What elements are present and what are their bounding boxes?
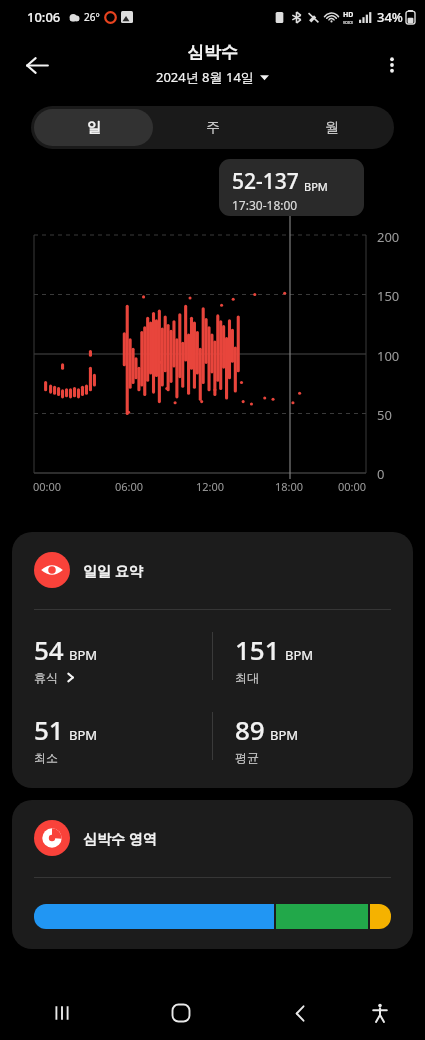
staticText: VOICE [343,20,354,25]
button[interactable]: Back [276,989,324,1037]
button[interactable]: Recents [38,989,86,1037]
button[interactable]: Home [157,989,205,1037]
button[interactable]: 54 [34,632,212,685]
staticText: 심박수 [187,42,238,63]
staticText: 54 [34,632,64,667]
staticText: 월 [325,119,339,137]
staticText: 주 [206,119,220,137]
staticText: 00:00 [33,479,62,494]
staticText: 150 [377,287,400,305]
staticText: 200 [377,228,400,246]
staticText: 17:30-18:00 [232,197,298,213]
staticText: BPM [69,646,98,664]
button[interactable]: 52-137 [219,159,364,216]
staticText: HD [343,10,354,20]
staticText: 26° [84,10,100,24]
button[interactable]: 2024년 8월 14일 [152,66,273,88]
button[interactable]: 주 [153,109,272,146]
button[interactable]: 일일 요약 [12,532,413,788]
staticText: 151 [235,632,280,667]
staticText: BPM [69,726,98,744]
staticText: 34% [377,8,403,26]
staticText: 12:00 [196,479,225,494]
staticText: BPM [304,179,328,194]
staticText: 18:00 [275,479,304,494]
staticText: 0 [377,465,385,483]
button[interactable]: 일 [34,109,153,146]
staticText: 00:00 [338,479,367,494]
staticText: 10:06 [27,8,61,26]
staticText: 휴식 [34,670,58,685]
staticText: 평균 [235,750,259,765]
button[interactable]: Back [14,42,60,88]
staticText: 최소 [34,750,58,765]
staticText: 06:00 [115,479,144,494]
button[interactable]: More options [371,44,413,86]
staticText: 일일 요약 [83,561,143,580]
staticText: BPM [285,646,314,664]
staticText: 2024년 8월 14일 [156,68,254,86]
button[interactable]: 월 [272,109,391,146]
staticText: 심박수 영역 [83,829,157,848]
staticText: 52-137 [232,167,299,196]
staticText: 일 [87,119,101,137]
staticText: 100 [377,347,400,365]
staticText: 51 [34,712,64,747]
staticText: BPM [270,726,299,744]
button[interactable]: 심박수 영역 [12,800,413,949]
button[interactable]: Accessibility [356,989,404,1037]
staticText: 최대 [235,670,259,685]
staticText: 89 [235,712,265,747]
staticText: 50 [377,406,392,424]
